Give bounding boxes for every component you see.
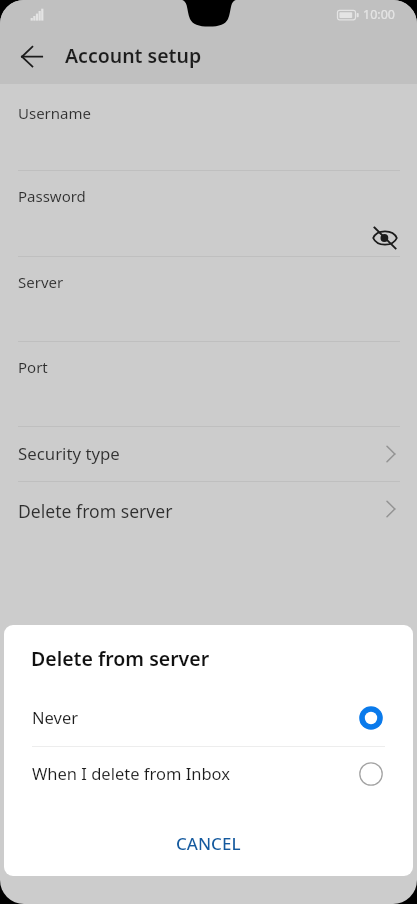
staticText: Delete from server xyxy=(31,645,210,672)
button[interactable]: Server xyxy=(0,256,417,341)
button[interactable]: Never xyxy=(4,690,413,744)
button[interactable]: Username xyxy=(0,84,417,170)
staticText: When I delete from Inbox xyxy=(32,762,230,784)
button[interactable]: CANCEL xyxy=(4,814,413,873)
staticText: Server xyxy=(18,272,64,292)
button[interactable]: Navigate up xyxy=(12,37,52,77)
button[interactable]: Show password xyxy=(372,225,398,251)
staticText: Port xyxy=(18,357,48,377)
staticText: Never xyxy=(32,706,79,728)
staticText: Username xyxy=(18,103,91,123)
button[interactable]: When I delete from Inbox xyxy=(4,746,413,800)
staticText: Delete from server xyxy=(18,499,173,523)
button[interactable]: Port xyxy=(0,341,417,427)
button[interactable]: Password xyxy=(0,170,417,256)
button[interactable]: Security type xyxy=(0,426,417,481)
staticText: CANCEL xyxy=(176,832,241,855)
staticText: 10:00 xyxy=(363,6,395,23)
staticText: Password xyxy=(18,186,86,206)
staticText: Security type xyxy=(18,442,120,465)
staticText: Account setup xyxy=(65,42,202,69)
button[interactable]: Delete from server xyxy=(0,481,417,536)
